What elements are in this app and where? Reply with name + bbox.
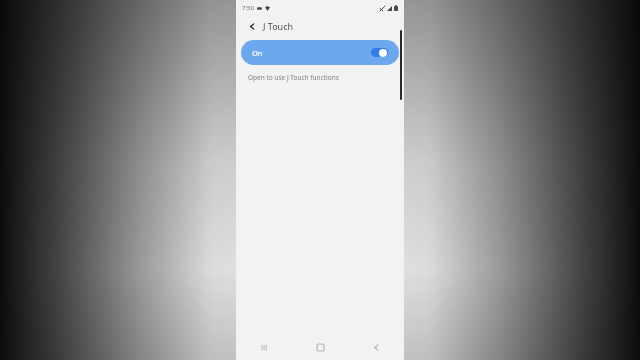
staticText: On <box>252 48 263 58</box>
staticText: Open to use J Touch functions <box>248 73 339 82</box>
button[interactable]: Back <box>348 334 404 360</box>
button[interactable]: On <box>241 40 399 65</box>
staticText: 7:50 <box>242 4 254 12</box>
button[interactable]: Back <box>245 19 259 33</box>
button[interactable]: Home <box>292 334 348 360</box>
staticText: J Touch <box>263 20 294 32</box>
button[interactable]: Recents <box>236 334 292 360</box>
